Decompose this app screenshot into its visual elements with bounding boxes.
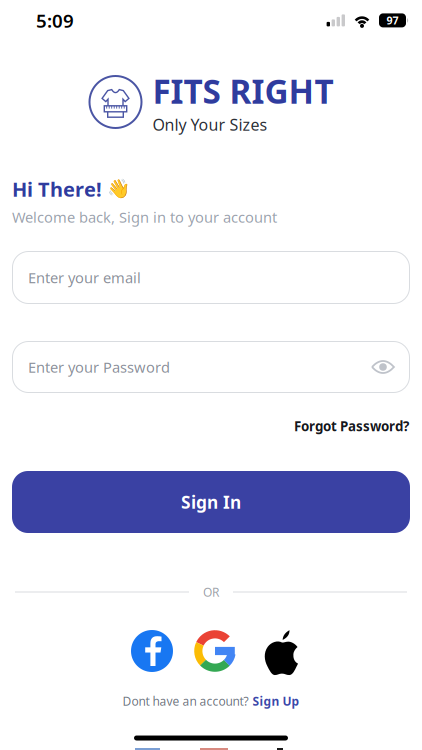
staticText: Forgot Password?: [294, 417, 409, 435]
staticText: FITS RIGHT: [152, 69, 333, 113]
button[interactable]: Show password: [372, 360, 394, 374]
staticText: Only Your Sizes: [152, 114, 267, 135]
staticText: 5:09: [36, 8, 74, 33]
button[interactable]: Sign in with Apple: [257, 627, 301, 675]
staticText: Hi There!: [12, 176, 102, 202]
staticText: 97: [386, 13, 398, 27]
staticText: OR: [203, 584, 219, 600]
staticText: Dont have an account?: [122, 693, 248, 709]
button[interactable]: Forgot Password?: [294, 417, 409, 435]
button[interactable]: Sign In: [12, 471, 410, 533]
button[interactable]: Sign Up: [252, 693, 299, 709]
staticText: Sign In: [181, 490, 241, 513]
button[interactable]: Sign in with Facebook: [131, 630, 173, 672]
button[interactable]: Sign in with Google: [194, 630, 236, 672]
button[interactable]: Enter your email: [12, 251, 410, 304]
staticText: Sign Up: [252, 693, 299, 709]
staticText: Enter your Password: [28, 357, 170, 377]
staticText: Enter your email: [28, 268, 141, 287]
staticText: Welcome back, Sign in to your account: [12, 207, 277, 227]
button[interactable]: Enter your Password: [12, 341, 410, 393]
staticText: 👋: [107, 178, 130, 200]
